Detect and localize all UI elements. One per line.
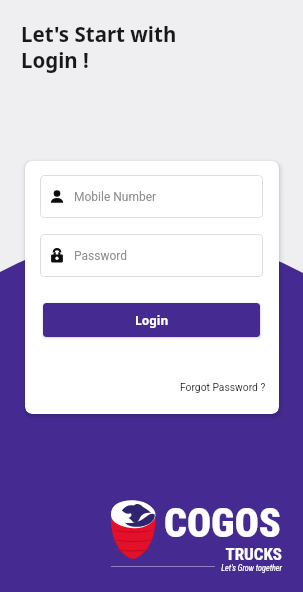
staticText: Let's Start with Login ! <box>21 20 177 74</box>
button[interactable]: Password <box>40 234 263 277</box>
staticText: TRUCKS <box>164 544 282 564</box>
button[interactable]: Login <box>43 303 260 337</box>
staticText: Mobile Number <box>74 190 157 204</box>
staticText: COGOS <box>164 500 281 547</box>
button[interactable]: Mobile Number <box>40 175 263 218</box>
staticText: Password <box>74 249 128 263</box>
staticText: Let's Grow together <box>164 563 282 573</box>
button[interactable]: Forgot Password ? <box>180 381 266 393</box>
staticText: Login <box>135 312 169 328</box>
